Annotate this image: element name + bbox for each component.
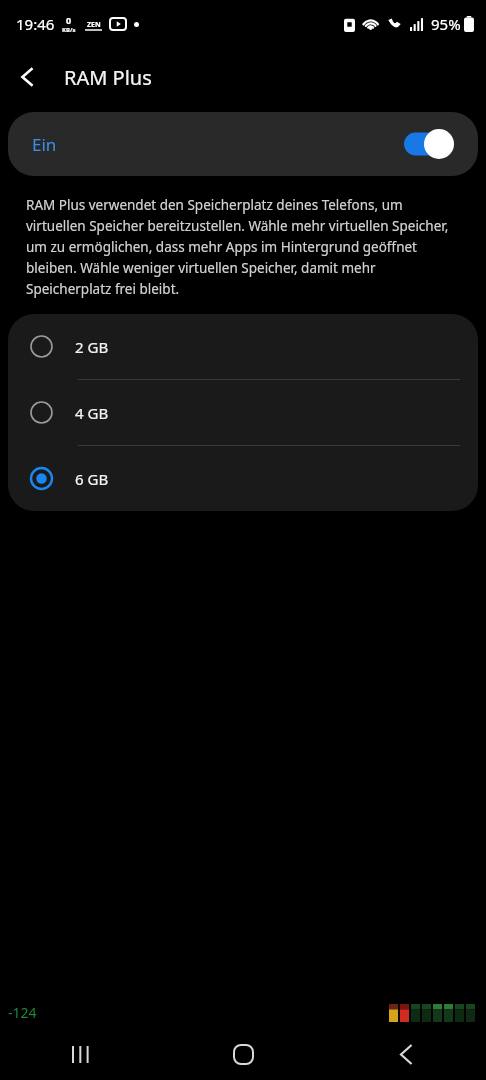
staticText: RAM Plus verwendet den Speicherplatz dei… [26,196,460,298]
staticText: KB/s [62,26,76,34]
staticText: RAM Plus [64,64,152,91]
staticText: ZEN [87,20,101,30]
staticText: 2 GB [75,337,109,357]
button[interactable]: 6 GB [8,446,478,511]
button[interactable]: Back [324,1028,486,1080]
staticText: 19:46 [16,14,55,34]
staticText: 95% [431,14,461,34]
button[interactable]: Recents [0,1028,162,1080]
button[interactable]: Back [0,49,56,105]
staticText: -124 [8,1003,37,1022]
staticText: 0 [66,14,72,26]
staticText: 6 GB [75,469,109,489]
button[interactable]: Home [162,1028,324,1080]
button[interactable]: 4 GB [8,380,478,445]
button[interactable]: Ein [8,112,478,176]
staticText: 4 GB [75,403,109,423]
staticText: Ein [32,133,57,156]
button[interactable]: 2 GB [8,314,478,379]
